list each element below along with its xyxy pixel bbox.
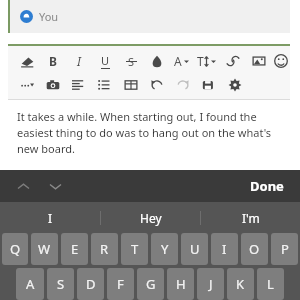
- staticText: I: [77, 53, 81, 69]
- button[interactable]: Save: [196, 73, 222, 97]
- button[interactable]: F: [107, 268, 134, 300]
- button[interactable]: E: [61, 233, 88, 265]
- button[interactable]: O: [241, 233, 268, 265]
- button[interactable]: List: [92, 73, 118, 97]
- button[interactable]: Clear formatting: [14, 49, 40, 73]
- staticText: A: [174, 53, 182, 69]
- staticText: U: [101, 53, 110, 68]
- button[interactable]: Settings: [222, 73, 248, 97]
- button[interactable]: Text colour: [170, 49, 193, 73]
- button[interactable]: Alignment: [66, 73, 92, 97]
- staticText: G: [146, 275, 156, 293]
- button[interactable]: Strikethrough: [118, 49, 144, 73]
- button[interactable]: Insert table: [118, 73, 144, 97]
- button[interactable]: W: [31, 233, 58, 265]
- staticText: K: [236, 275, 245, 293]
- button[interactable]: S: [47, 268, 74, 300]
- button[interactable]: R: [91, 233, 118, 265]
- button[interactable]: Insert image: [246, 49, 272, 73]
- button[interactable]: It takes a while. When starting out, I f…: [8, 100, 290, 170]
- button[interactable]: K: [227, 268, 254, 300]
- button[interactable]: Font size: [193, 49, 220, 73]
- staticText: I'm: [242, 210, 260, 226]
- button[interactable]: L: [257, 268, 284, 300]
- staticText: S: [57, 275, 65, 293]
- staticText: L: [267, 275, 274, 293]
- staticText: R: [100, 240, 109, 258]
- button[interactable]: Insert emoji: [272, 49, 290, 73]
- staticText: F: [117, 275, 124, 293]
- button[interactable]: U: [181, 233, 208, 265]
- button[interactable]: Next field: [44, 175, 66, 197]
- button[interactable]: G: [137, 268, 164, 300]
- button[interactable]: Y: [151, 233, 178, 265]
- button[interactable]: J: [197, 268, 224, 300]
- staticText: It takes a while. When starting out, I f…: [17, 109, 282, 156]
- button[interactable]: I: [211, 233, 238, 265]
- button[interactable]: Camera: [40, 73, 66, 97]
- button[interactable]: I'm: [201, 202, 300, 233]
- button[interactable]: P: [271, 233, 298, 265]
- staticText: J: [209, 275, 213, 293]
- staticText: You: [39, 9, 59, 24]
- button[interactable]: Undo: [144, 73, 170, 97]
- button[interactable]: Hey: [101, 202, 200, 233]
- button[interactable]: Previous field: [12, 175, 34, 197]
- button[interactable]: A: [16, 268, 44, 300]
- button[interactable]: More options: [14, 73, 40, 97]
- staticText: U: [190, 240, 200, 258]
- button[interactable]: Italic: [66, 49, 92, 73]
- staticText: T: [131, 240, 139, 258]
- staticText: S: [128, 54, 135, 69]
- staticText: T: [197, 53, 204, 69]
- button[interactable]: Q: [2, 233, 28, 265]
- staticText: O: [249, 240, 260, 258]
- button[interactable]: Underline: [92, 49, 118, 73]
- staticText: H: [176, 275, 186, 293]
- staticText: I: [222, 240, 227, 258]
- staticText: E: [71, 240, 79, 258]
- button[interactable]: Redo: [170, 73, 196, 97]
- button[interactable]: Bold: [40, 49, 66, 73]
- button[interactable]: Insert link: [220, 49, 246, 73]
- staticText: W: [38, 240, 51, 258]
- button[interactable]: D: [77, 268, 104, 300]
- button[interactable]: Highlight colour: [144, 49, 170, 73]
- button[interactable]: Done: [246, 173, 288, 199]
- button[interactable]: T: [121, 233, 148, 265]
- staticText: B: [49, 53, 57, 69]
- staticText: I: [48, 210, 53, 226]
- staticText: P: [281, 240, 289, 258]
- button[interactable]: I: [0, 202, 100, 233]
- button[interactable]: You: [8, 0, 290, 33]
- staticText: D: [86, 275, 96, 293]
- staticText: Y: [161, 240, 169, 258]
- staticText: Q: [10, 240, 21, 258]
- staticText: Done: [250, 177, 284, 195]
- button[interactable]: H: [167, 268, 194, 300]
- staticText: Hey: [140, 210, 162, 226]
- staticText: A: [26, 275, 35, 293]
